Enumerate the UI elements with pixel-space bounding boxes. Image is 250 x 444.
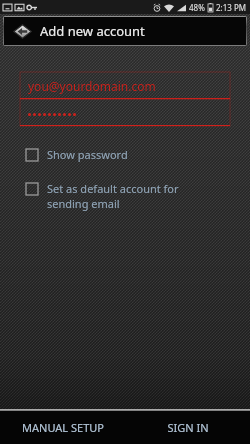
button[interactable]: Navigate up — [11, 20, 33, 42]
button[interactable] — [20, 99, 230, 126]
button[interactable]: SIGN IN — [125, 411, 250, 444]
button[interactable]: Set as default account for — [20, 181, 230, 211]
button[interactable]: you@yourdomain.com — [20, 72, 230, 99]
staticText: Add new account — [40, 22, 145, 40]
button[interactable]: Show password — [20, 147, 230, 162]
staticText: Set as default account for — [47, 181, 179, 196]
staticText: sending email — [47, 196, 120, 211]
button[interactable]: MANUAL SETUP — [0, 411, 125, 444]
staticText: MANUAL SETUP — [22, 420, 104, 435]
staticText: you@yourdomain.com — [28, 78, 156, 94]
staticText: 48% — [189, 2, 205, 13]
staticText: SIGN IN — [167, 420, 209, 435]
staticText: Show password — [47, 147, 128, 162]
staticText: 2:13 PM — [216, 2, 247, 13]
